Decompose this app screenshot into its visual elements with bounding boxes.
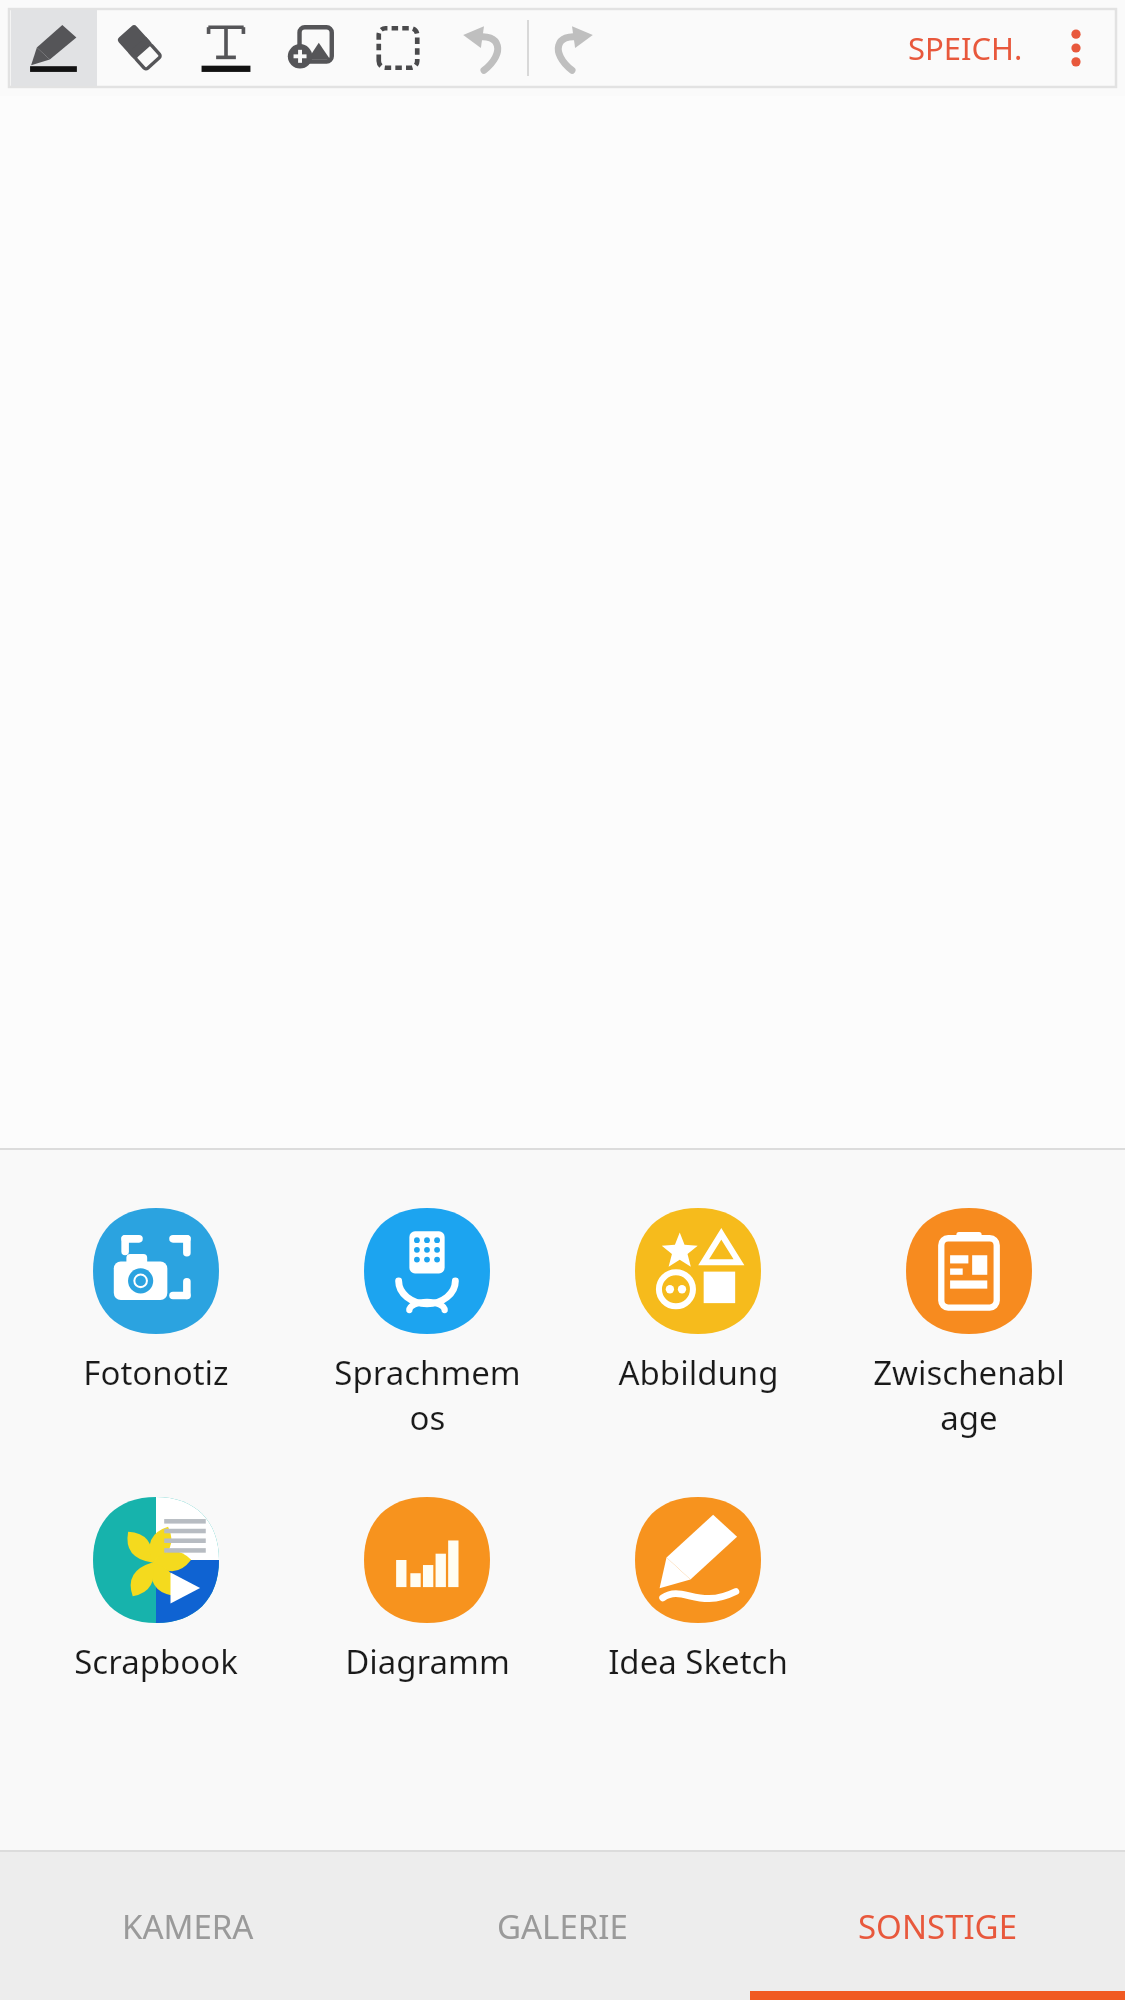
button[interactable]: Text	[183, 10, 269, 86]
button[interactable]: Diagramm	[312, 1497, 542, 1684]
button[interactable]: Fotonotiz	[41, 1208, 271, 1395]
button[interactable]: Idea Sketch	[583, 1497, 813, 1684]
button[interactable]: SPEICH.	[892, 10, 1039, 86]
button[interactable]: Sprachmem os	[312, 1208, 542, 1439]
staticText: GALERIE	[497, 1904, 628, 1949]
staticText: Zwischenabl age	[873, 1350, 1065, 1439]
button[interactable]: Redo	[529, 10, 615, 86]
button[interactable]: Abbildung	[583, 1208, 813, 1395]
staticText: Sprachmem os	[334, 1350, 521, 1439]
button[interactable]: Scrapbook	[41, 1497, 271, 1684]
staticText: KAMERA	[122, 1904, 254, 1949]
button[interactable]: Zwischenabl age	[854, 1208, 1084, 1439]
button[interactable]: KAMERA	[0, 1852, 375, 2000]
staticText: Scrapbook	[74, 1639, 238, 1684]
button[interactable]: Undo	[441, 10, 527, 86]
button[interactable]: More options	[1039, 10, 1113, 86]
staticText: Fotonotiz	[83, 1350, 229, 1395]
button[interactable]: Select	[355, 10, 441, 86]
button[interactable]: Eraser	[97, 10, 183, 86]
staticText: SONSTIGE	[858, 1904, 1017, 1949]
button[interactable]: SONSTIGE	[750, 1852, 1125, 2000]
staticText: Abbildung	[618, 1350, 779, 1395]
button[interactable]: Insert image	[269, 10, 355, 86]
staticText: SPEICH.	[908, 27, 1023, 69]
staticText: Idea Sketch	[608, 1639, 788, 1684]
button[interactable]: GALERIE	[375, 1852, 750, 2000]
button[interactable]: Pen	[11, 10, 97, 86]
staticText: Diagramm	[345, 1639, 510, 1684]
